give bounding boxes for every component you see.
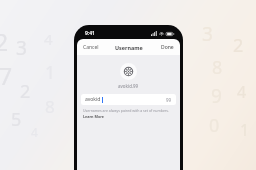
staticText: 4 — [237, 81, 247, 103]
button[interactable]: Profile photo — [120, 63, 137, 80]
staticText: 5 — [11, 107, 22, 132]
staticText: 8 — [212, 55, 223, 80]
button[interactable]: Cancel — [81, 41, 101, 54]
button[interactable]: Learn More — [83, 114, 105, 119]
staticText: avokid — [85, 96, 101, 103]
staticText: 99 — [166, 97, 172, 103]
staticText: 2 — [20, 79, 31, 104]
staticText: avokid.99 — [118, 83, 139, 89]
staticText: 4 — [31, 124, 38, 140]
staticText: Done — [161, 44, 174, 51]
staticText: Cancel — [83, 44, 99, 51]
staticText: 3 — [202, 21, 213, 47]
staticText: 3 — [16, 35, 27, 61]
button[interactable]: Done — [159, 41, 176, 54]
staticText: 9:41 — [85, 30, 95, 37]
staticText: Usernames are always paired with a set o… — [83, 108, 169, 113]
staticText: 4 — [44, 29, 53, 49]
button[interactable]: avokid — [81, 94, 176, 105]
staticText: 1 — [240, 119, 250, 141]
staticText: 7 — [0, 60, 13, 91]
staticText: Username — [115, 44, 143, 51]
staticText: Learn More — [83, 114, 105, 119]
staticText: 2 — [233, 33, 244, 58]
staticText: 9 — [211, 83, 222, 109]
staticText: 8 — [45, 95, 55, 118]
staticText: 2 — [0, 26, 9, 57]
staticText: 0 — [209, 113, 220, 138]
